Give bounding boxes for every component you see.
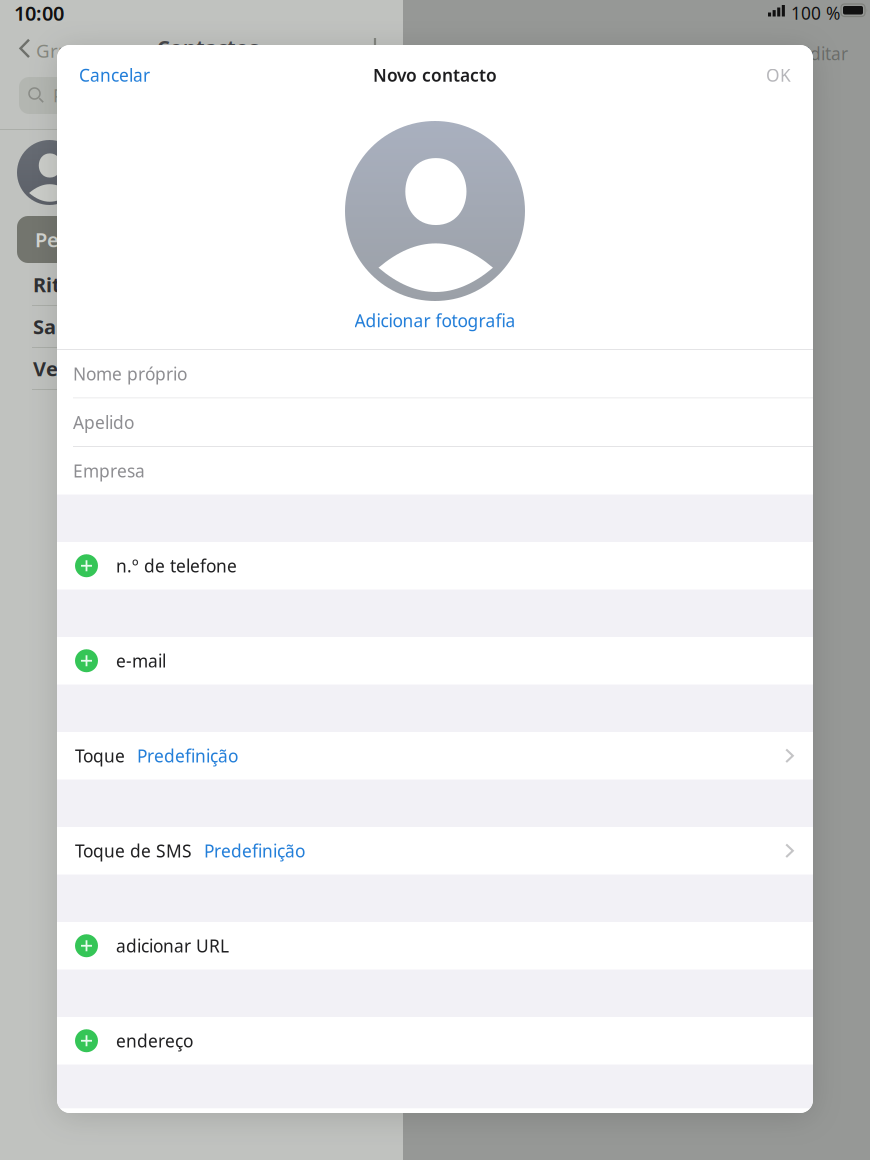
staticText: Grupos	[36, 38, 101, 63]
staticText: e-mail	[116, 649, 166, 672]
staticText: Adicionar fotografia	[354, 309, 515, 332]
button[interactable]: e-mail	[57, 637, 813, 684]
staticText: 100 %	[791, 1, 840, 24]
staticText: Nome próprio	[73, 362, 187, 385]
staticText: endereço	[116, 1029, 193, 1052]
button[interactable]: endereço	[57, 1017, 813, 1064]
button[interactable]: Cancelar	[57, 65, 189, 85]
staticText: Editar	[800, 42, 848, 65]
staticText: Vera Lopes	[33, 355, 143, 382]
button[interactable]: Grupos	[19, 38, 101, 63]
button[interactable]: My Card	[17, 140, 82, 205]
button[interactable]: n.º de telefone	[57, 542, 813, 589]
staticText: Empresa	[73, 459, 145, 482]
button[interactable]: Adicionar fotografia	[344, 301, 525, 342]
staticText: Toque	[75, 744, 125, 767]
staticText: Contactos	[157, 34, 259, 61]
staticText: Sandra Nunes	[33, 313, 172, 340]
button[interactable]: Pesquisar	[19, 77, 384, 114]
staticText: OK	[766, 63, 791, 86]
staticText: Predefinição	[137, 744, 238, 767]
staticText: Apelido	[73, 411, 134, 434]
button[interactable]: Vera Lopes	[0, 348, 403, 390]
staticText: Predefinição	[204, 839, 305, 862]
staticText: Pesquisar	[53, 84, 132, 107]
button[interactable]: New contact	[366, 38, 384, 56]
button[interactable]: Sandra Nunes	[0, 306, 403, 348]
staticText: Novo contacto	[373, 63, 497, 86]
button[interactable]: Editar	[800, 36, 870, 71]
button[interactable]: Pessoal	[17, 216, 127, 263]
staticText: Cancelar	[79, 63, 150, 86]
button[interactable]: Toque	[57, 732, 813, 779]
staticText: Pessoal	[35, 226, 109, 253]
button[interactable]: Toque de SMS	[57, 827, 813, 874]
staticText: Toque de SMS	[75, 839, 192, 862]
button[interactable]: OK	[731, 65, 813, 85]
staticText: 10:00	[14, 0, 64, 26]
staticText: Rita Abreu	[33, 271, 139, 298]
staticText: adicionar URL	[116, 934, 229, 957]
staticText: n.º de telefone	[116, 554, 237, 577]
button[interactable]: adicionar URL	[57, 922, 813, 969]
button[interactable]: Rita Abreu	[0, 264, 403, 306]
